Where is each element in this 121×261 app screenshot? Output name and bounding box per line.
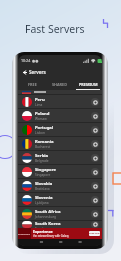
button[interactable]: Romania — [22, 137, 99, 150]
button[interactable]: PREMIUM — [74, 78, 102, 90]
button[interactable]: Server settings — [91, 126, 99, 134]
staticText: Singapore — [35, 173, 51, 177]
button[interactable]: Singapore — [22, 165, 99, 178]
staticText: Ljubljana — [35, 201, 49, 205]
button[interactable]: SAMSUNG — [18, 228, 102, 239]
staticText: Slovenia — [35, 195, 53, 201]
staticText: PREMIUM — [79, 82, 98, 87]
button[interactable]: Serbia — [22, 151, 99, 164]
staticText: 10:24 ●● — [21, 58, 39, 63]
staticText: Bucharest — [35, 145, 51, 149]
staticText: Experience — [33, 229, 53, 234]
button[interactable]: South Africa — [22, 207, 99, 220]
staticText: Shop now — [89, 232, 100, 235]
staticText: Belgrade — [35, 159, 49, 163]
staticText: Singapore — [35, 167, 56, 173]
staticText: SHARED — [52, 82, 68, 87]
button[interactable]: Server settings — [91, 154, 99, 162]
button[interactable]: Shop now — [89, 231, 100, 236]
staticText: Romania — [35, 139, 54, 145]
staticText: Seoul — [35, 227, 44, 228]
staticText: Portugal — [35, 125, 54, 131]
staticText: SAMSUNG — [18, 232, 31, 235]
button[interactable]: Poland — [22, 109, 99, 122]
staticText: Peru — [35, 97, 45, 103]
button[interactable]: Slovenia — [22, 193, 99, 206]
button[interactable]: Peru — [22, 95, 99, 108]
staticText: Slovakia — [35, 181, 53, 187]
staticText: Fast Servers — [25, 22, 85, 36]
staticText: FREE — [28, 82, 37, 87]
staticText: Poland — [35, 111, 50, 117]
staticText: Warsaw — [35, 117, 47, 121]
staticText: Lima — [35, 103, 43, 107]
button[interactable]: Server settings — [91, 182, 99, 190]
button[interactable]: Server settings — [91, 196, 99, 204]
staticText: Lisbon — [35, 131, 45, 135]
button[interactable]: Server settings — [91, 168, 99, 176]
staticText: Serbia — [35, 153, 49, 159]
button[interactable]: Server settings — [91, 112, 99, 120]
button[interactable]: Server settings — [91, 140, 99, 148]
button[interactable]: SHARED — [46, 78, 74, 90]
staticText: South Africa — [35, 209, 61, 215]
staticText: South Korea — [35, 221, 61, 227]
staticText: the extraordinary with Galaxy — [33, 234, 69, 238]
staticText: Johannesburg — [35, 215, 56, 219]
button[interactable]: Server settings — [91, 221, 99, 228]
button[interactable]: FREE — [18, 78, 46, 90]
button[interactable]: Server settings — [91, 98, 99, 106]
staticText: Bratislava — [35, 187, 50, 191]
button[interactable]: Back — [20, 68, 28, 76]
button[interactable]: Server settings — [91, 210, 99, 218]
button[interactable]: Slovakia — [22, 179, 99, 192]
staticText: Servers — [29, 69, 46, 75]
button[interactable]: South Korea — [22, 221, 99, 228]
button[interactable]: Portugal — [22, 123, 99, 136]
